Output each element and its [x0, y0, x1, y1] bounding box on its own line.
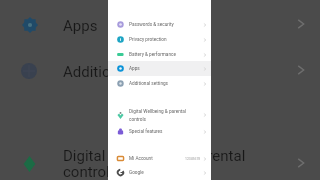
staticText: Apps: [129, 66, 203, 72]
staticText: Additional settings: [129, 81, 203, 87]
staticText: Special features: [129, 129, 203, 135]
button[interactable]: Open Additional settings: [295, 64, 307, 76]
button[interactable]: Special features: [108, 124, 211, 139]
staticText: Additional settings: [63, 63, 188, 81]
button[interactable]: Digital Wellbeing & parental controls: [108, 104, 211, 126]
button[interactable]: Open Digital Wellbeing: [295, 157, 307, 169]
button[interactable]: Privacy protection: [108, 32, 211, 47]
staticText: Google: [129, 170, 203, 176]
button[interactable]: Additional settings: [108, 76, 211, 91]
staticText: Passwords & security: [129, 22, 203, 28]
button[interactable]: Battery & performance: [108, 47, 211, 62]
button[interactable]: Google: [108, 165, 211, 180]
staticText: Mi Account: [129, 156, 185, 162]
button[interactable]: Open Apps: [295, 18, 307, 30]
staticText: Privacy protection: [129, 37, 203, 43]
button[interactable]: Mi Account: [108, 151, 211, 166]
button[interactable]: Apps: [108, 61, 211, 76]
staticText: Digital Wellbeing & parental controls: [129, 109, 203, 122]
staticText: Apps: [63, 17, 98, 35]
staticText: Digital Wellbeing & parental controls: [63, 147, 258, 180]
staticText: 12345678: [185, 157, 201, 161]
staticText: Battery & performance: [129, 52, 203, 58]
button[interactable]: Passwords & security: [108, 17, 211, 32]
